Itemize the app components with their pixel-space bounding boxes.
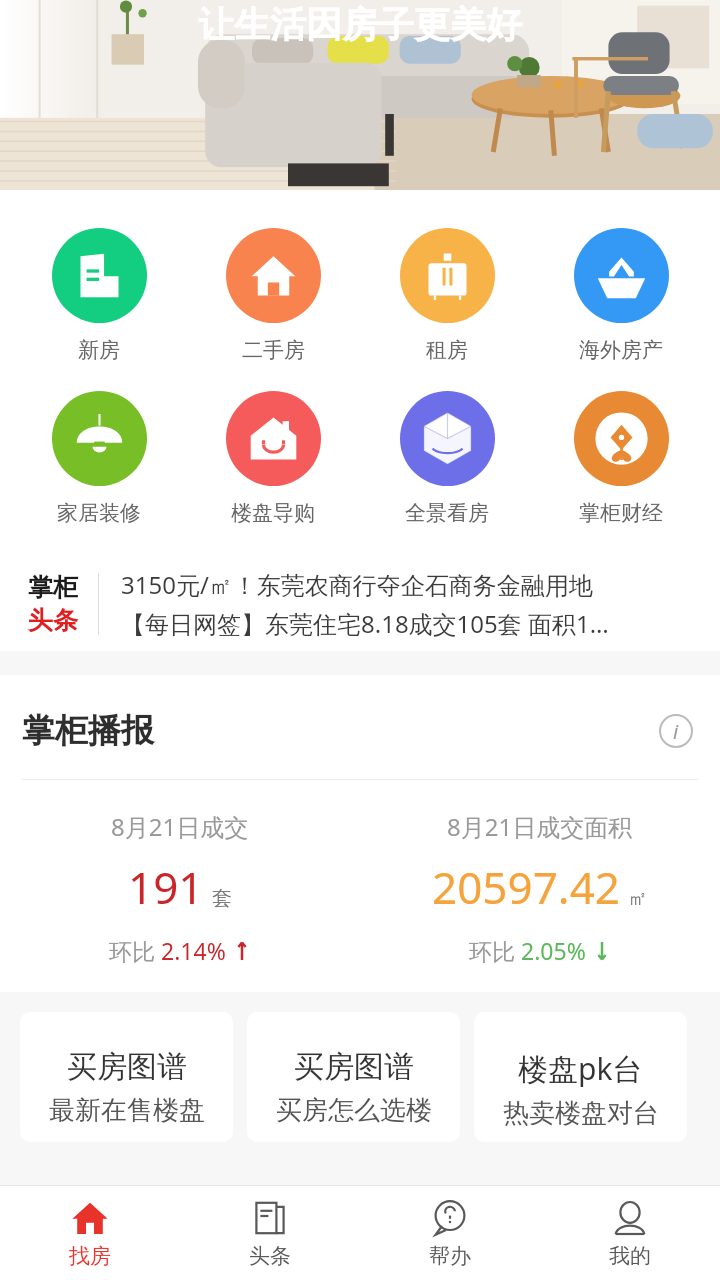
- staticText: 20597.42: [432, 857, 620, 917]
- staticText: 8月21日成交面积: [447, 810, 633, 843]
- staticText: 头条: [249, 1243, 291, 1269]
- staticText: 买房怎么选楼: [276, 1094, 432, 1127]
- staticText: 买房图谱: [67, 1048, 187, 1086]
- staticText: 帮办: [429, 1243, 471, 1269]
- staticText: i: [673, 718, 679, 745]
- staticText: 热卖楼盘对台: [503, 1097, 659, 1130]
- staticText: 2.14%: [161, 935, 226, 966]
- staticText: 租房: [426, 337, 468, 363]
- staticText: 最新在售楼盘: [49, 1094, 205, 1127]
- staticText: 头条: [28, 605, 78, 636]
- staticText: 掌柜财经: [579, 500, 663, 526]
- button[interactable]: 楼盘pk台: [474, 1012, 687, 1142]
- staticText: 我的: [609, 1243, 651, 1269]
- staticText: 楼盘导购: [231, 500, 315, 526]
- staticText: 二手房: [242, 337, 305, 363]
- staticText: 掌柜播报: [22, 710, 154, 752]
- button[interactable]: 楼盘导购: [198, 391, 348, 526]
- staticText: 全景看房: [405, 500, 489, 526]
- button[interactable]: 帮办: [360, 1186, 540, 1280]
- staticText: 让生活因房子更美好: [198, 2, 522, 47]
- button[interactable]: 海外房产: [546, 228, 696, 363]
- button[interactable]: 家居装修: [24, 391, 174, 526]
- button[interactable]: 找房: [0, 1186, 180, 1280]
- staticText: 套: [212, 886, 232, 911]
- staticText: 2.05%: [521, 935, 586, 966]
- button[interactable]: 买房图谱: [247, 1012, 460, 1142]
- button[interactable]: 8月21日成交面积: [360, 810, 720, 966]
- staticText: 家居装修: [57, 500, 141, 526]
- staticText: 环比: [109, 935, 161, 966]
- staticText: 找房: [69, 1243, 111, 1269]
- staticText: 环比: [469, 935, 521, 966]
- button[interactable]: 全景看房: [372, 391, 522, 526]
- button[interactable]: 二手房: [198, 228, 348, 363]
- button[interactable]: 租房: [372, 228, 522, 363]
- staticText: ㎡: [628, 886, 648, 911]
- staticText: 新房: [78, 337, 120, 363]
- staticText: 8月21日成交: [111, 810, 249, 843]
- staticText: 掌柜: [28, 572, 78, 603]
- staticText: 191: [128, 857, 204, 917]
- button[interactable]: 买房图谱: [20, 1012, 233, 1142]
- button[interactable]: 掌柜: [0, 556, 720, 651]
- staticText: 【每日网签】东莞住宅8.18成交105套 面积1…: [121, 607, 609, 640]
- button[interactable]: 掌柜财经: [546, 391, 696, 526]
- button[interactable]: 头条: [180, 1186, 360, 1280]
- staticText: 海外房产: [579, 337, 663, 363]
- staticText: 3150元/㎡！东莞农商行夺企石商务金融用地: [121, 568, 593, 601]
- button[interactable]: 8月21日成交: [0, 810, 360, 966]
- staticText: 楼盘pk台: [518, 1048, 643, 1089]
- staticText: 买房图谱: [294, 1048, 414, 1086]
- button[interactable]: 我的: [540, 1186, 720, 1280]
- button[interactable]: 新房: [24, 228, 174, 363]
- button[interactable]: 说明: [654, 709, 698, 753]
